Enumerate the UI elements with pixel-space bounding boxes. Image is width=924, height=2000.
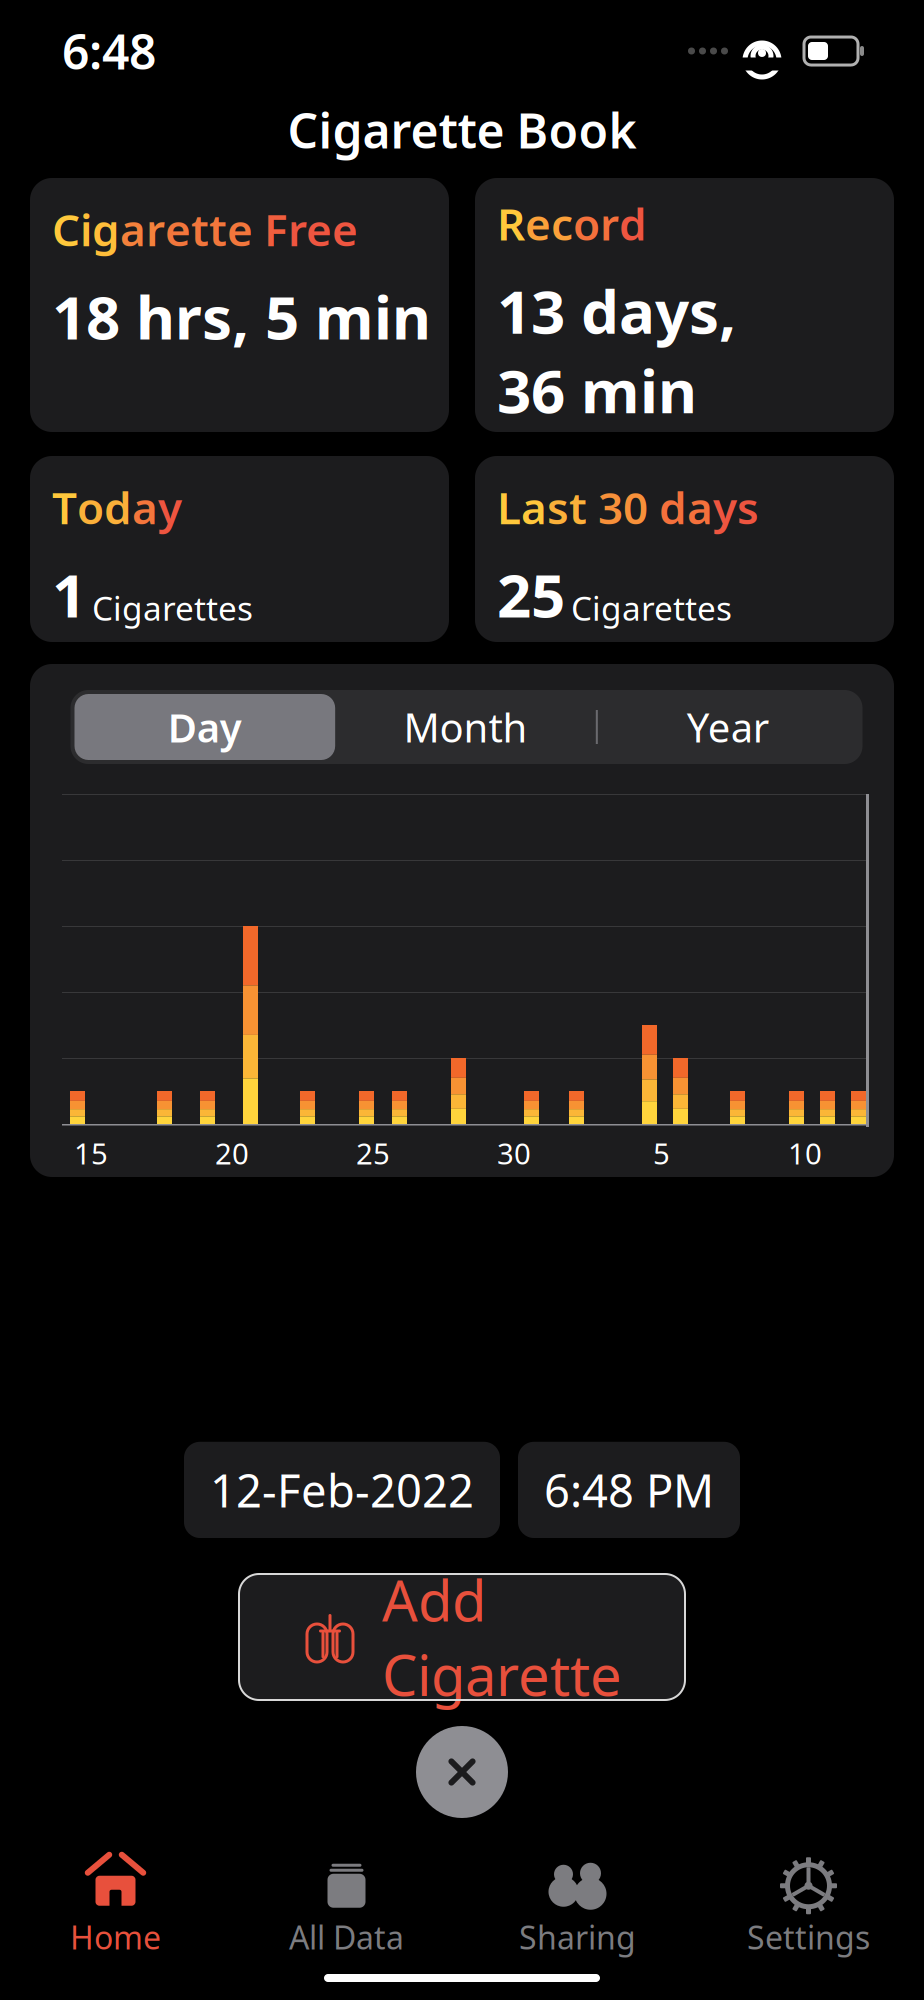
- staticText: 30: [598, 478, 648, 536]
- staticText: ar: [120, 200, 165, 258]
- staticText: 18 hrs, 5 min: [52, 276, 431, 356]
- staticText: La: [497, 478, 547, 536]
- staticText: Cigarette Book: [287, 98, 636, 162]
- staticText: 25: [356, 1133, 390, 1172]
- staticText: Sharing: [519, 1916, 636, 1958]
- staticText: a: [132, 478, 158, 536]
- button[interactable]: Close: [416, 1726, 508, 1818]
- staticText: 12-Feb-2022: [210, 1460, 474, 1520]
- staticText: ec: [525, 194, 573, 252]
- staticText: Day: [168, 700, 242, 753]
- staticText: od: [77, 478, 132, 536]
- staticText: 20: [215, 1133, 249, 1172]
- staticText: 6:48 PM: [544, 1460, 714, 1520]
- button[interactable]: Home: [0, 1852, 231, 1964]
- staticText: 1: [52, 554, 86, 634]
- staticText: 15: [74, 1133, 108, 1172]
- staticText: Year: [687, 700, 770, 753]
- staticText: da: [648, 478, 713, 536]
- staticText: Add Cigarette: [382, 1563, 622, 1711]
- button[interactable]: Settings: [693, 1852, 924, 1964]
- staticText: Month: [403, 700, 527, 753]
- staticText: All Data: [289, 1916, 404, 1958]
- staticText: st: [547, 478, 598, 536]
- button[interactable]: 6:48 PM: [518, 1442, 740, 1538]
- staticText: d: [619, 194, 647, 252]
- staticText: 25: [497, 554, 565, 634]
- staticText: Home: [70, 1916, 161, 1958]
- staticText: 10: [788, 1133, 822, 1172]
- staticText: R: [497, 194, 525, 252]
- staticText: ig: [80, 200, 120, 258]
- staticText: ette: [165, 200, 253, 258]
- staticText: or: [573, 194, 619, 252]
- staticText: Cigarettes: [571, 586, 732, 630]
- staticText: Settings: [747, 1916, 870, 1958]
- button[interactable]: Year: [598, 694, 858, 760]
- button[interactable]: 12-Feb-2022: [184, 1442, 500, 1538]
- staticText: 13 days, 36 min: [497, 270, 736, 430]
- staticText: y: [158, 478, 182, 536]
- staticText: 30: [497, 1133, 531, 1172]
- staticText: 6:48: [62, 19, 156, 83]
- staticText: 5: [653, 1133, 670, 1172]
- button[interactable]: Day: [74, 694, 335, 760]
- button[interactable]: Month: [335, 694, 596, 760]
- staticText: ree: [288, 200, 358, 258]
- button[interactable]: Sharing: [462, 1852, 693, 1964]
- staticText: Cigarettes: [92, 586, 253, 630]
- staticText: ys: [713, 478, 759, 536]
- staticText: C: [52, 200, 80, 258]
- staticText: F: [253, 200, 288, 258]
- button[interactable]: All Data: [231, 1852, 462, 1964]
- staticText: T: [52, 478, 77, 536]
- button[interactable]: Add Cigarette: [239, 1574, 685, 1700]
